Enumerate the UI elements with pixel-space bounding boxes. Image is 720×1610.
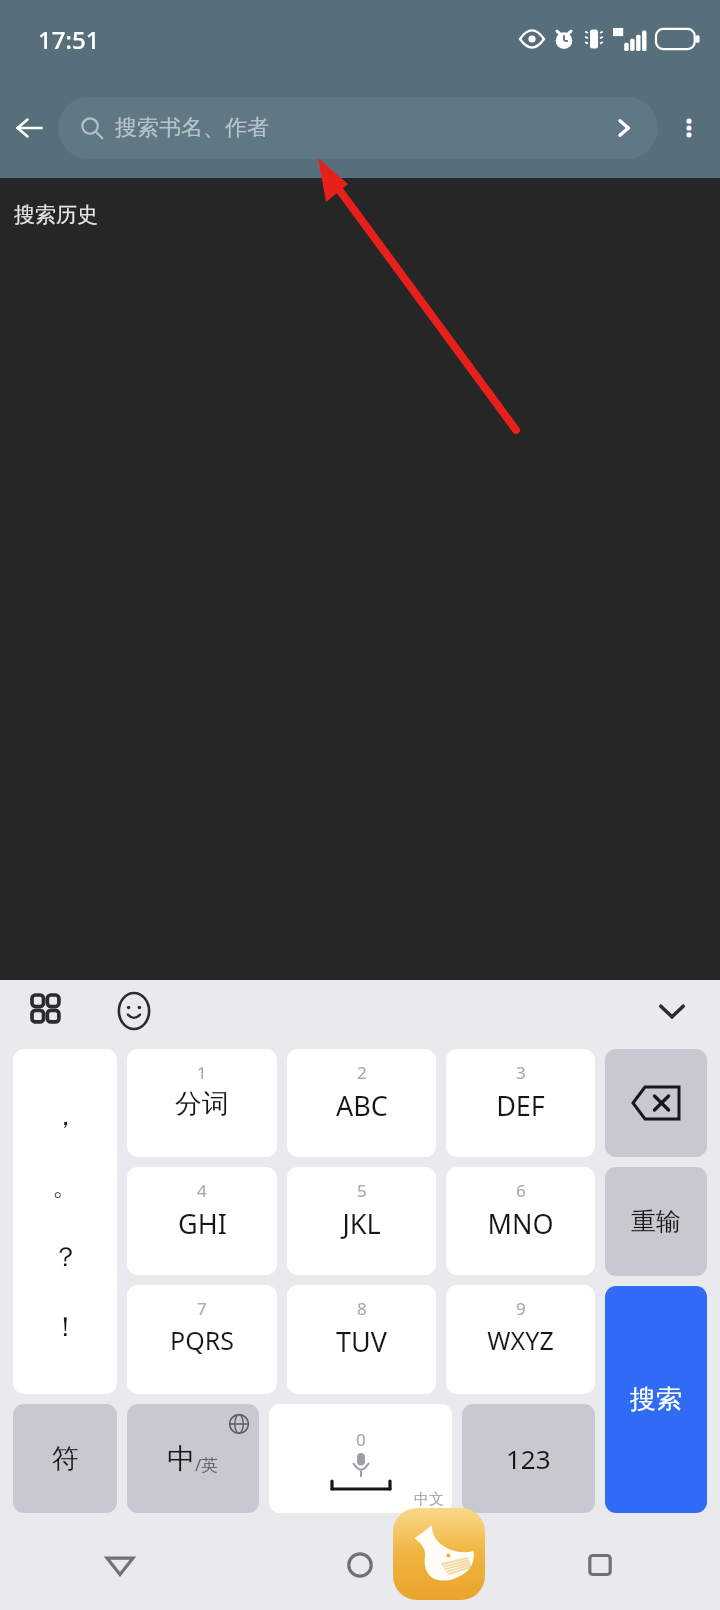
button[interactable]: 搜索 xyxy=(605,1286,707,1513)
staticText: 重输 xyxy=(631,1206,681,1237)
button[interactable]: Back xyxy=(0,1520,240,1610)
button[interactable]: Recents xyxy=(480,1520,720,1610)
button[interactable]: Hide keyboard xyxy=(646,985,698,1037)
staticText: 2 xyxy=(357,1061,367,1084)
button[interactable]: 符 xyxy=(13,1404,117,1513)
staticText: ， xyxy=(52,1099,79,1133)
staticText: 8 xyxy=(357,1297,367,1320)
button[interactable]: 8 xyxy=(287,1285,436,1394)
staticText: PQRS xyxy=(170,1323,234,1357)
staticText: 17:51 xyxy=(38,23,100,56)
staticText: 分词 xyxy=(175,1087,229,1121)
button[interactable]: 9 xyxy=(446,1285,595,1394)
staticText: ABC xyxy=(336,1087,388,1124)
staticText: 搜索书名、作者 xyxy=(115,114,269,142)
staticText: 123 xyxy=(506,1441,551,1476)
staticText: ？ xyxy=(52,1240,79,1274)
staticText: /英 xyxy=(195,1453,219,1476)
staticText: DEF xyxy=(496,1087,545,1124)
staticText: 中 xyxy=(167,1441,195,1476)
staticText: 7 xyxy=(197,1297,207,1320)
button[interactable]: 1 xyxy=(127,1049,277,1157)
button[interactable]: Delete xyxy=(605,1049,707,1157)
button[interactable]: Keyboard layouts xyxy=(22,985,74,1037)
button[interactable]: ， xyxy=(13,1049,117,1394)
button[interactable]: 0 xyxy=(269,1404,452,1513)
staticText: 0 xyxy=(356,1428,366,1451)
staticText: 搜索历史 xyxy=(14,202,98,228)
staticText: TUV xyxy=(336,1323,387,1360)
staticText: JKL xyxy=(342,1205,381,1242)
button[interactable]: 重输 xyxy=(605,1167,707,1276)
staticText: 1 xyxy=(197,1061,207,1084)
button[interactable]: 123 xyxy=(462,1404,595,1513)
staticText: MNO xyxy=(487,1205,554,1242)
button[interactable]: Emoji xyxy=(108,985,160,1037)
button[interactable]: 搜索书名、作者 xyxy=(58,97,658,159)
staticText: 3 xyxy=(516,1061,526,1084)
staticText: ！ xyxy=(52,1310,79,1344)
button[interactable]: 中 xyxy=(127,1404,259,1513)
button[interactable]: 3 xyxy=(446,1049,595,1157)
button[interactable]: 4 xyxy=(127,1167,277,1275)
button[interactable]: More options xyxy=(658,97,720,159)
button[interactable]: 7 xyxy=(127,1285,277,1394)
staticText: 符 xyxy=(52,1442,79,1476)
staticText: 搜索 xyxy=(630,1383,682,1416)
staticText: GHI xyxy=(178,1205,227,1242)
staticText: 。 xyxy=(52,1169,79,1203)
staticText: 6 xyxy=(516,1179,526,1202)
staticText: 4 xyxy=(197,1179,207,1202)
button[interactable]: Home xyxy=(240,1520,480,1610)
button[interactable]: 2 xyxy=(287,1049,436,1157)
staticText: WXYZ xyxy=(487,1323,554,1357)
button[interactable]: 6 xyxy=(446,1167,595,1275)
staticText: 9 xyxy=(516,1297,526,1320)
staticText: 5 xyxy=(357,1179,367,1202)
button[interactable]: 5 xyxy=(287,1167,436,1275)
staticText: 中文 xyxy=(414,1490,444,1509)
button[interactable]: Back xyxy=(0,99,58,157)
